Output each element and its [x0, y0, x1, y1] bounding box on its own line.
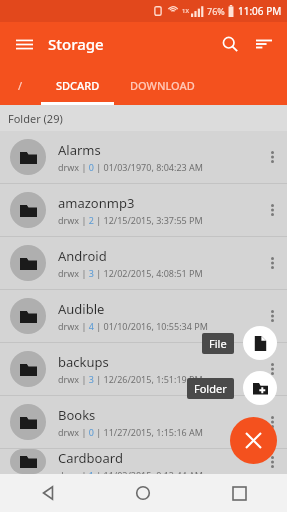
staticText: 11:06 PM: [238, 4, 282, 18]
staticText: Storage: [48, 34, 104, 54]
button[interactable]: Cardboard: [0, 449, 287, 474]
staticText: drwx | 3 | 12/02/2015, 4:08:51 PM: [58, 267, 203, 279]
staticText: 1X: [182, 7, 189, 15]
staticText: drwx | 0 | 01/03/1970, 8:04:23 AM: [58, 161, 203, 173]
button[interactable]: More options: [257, 290, 287, 342]
staticText: SDCARD: [56, 78, 100, 93]
button[interactable]: amazonmp3: [0, 184, 287, 236]
staticText: DOWNLOAD: [130, 78, 195, 93]
staticText: drwx | 0 | 11/27/2015, 1:15:16 AM: [58, 426, 203, 438]
staticText: Folder: [194, 381, 227, 396]
button[interactable]: New Folder: [243, 371, 277, 405]
staticText: drwx | 3 | 12/26/2015, 1:51:19 PM: [58, 373, 203, 385]
button[interactable]: /: [0, 66, 40, 105]
staticText: File: [209, 336, 227, 351]
button[interactable]: More options: [257, 396, 287, 448]
button[interactable]: Alarms: [0, 131, 287, 183]
staticText: Folder (29): [8, 111, 63, 126]
button[interactable]: Audible: [0, 290, 287, 342]
staticText: amazonmp3: [58, 194, 135, 212]
button[interactable]: Home: [95, 474, 191, 512]
button[interactable]: New File: [243, 326, 277, 360]
button[interactable]: More options: [257, 449, 287, 474]
staticText: /: [18, 78, 23, 93]
button[interactable]: Books: [0, 396, 287, 448]
staticText: Cardboard: [58, 449, 123, 467]
staticText: drwx | 1 | 11/02/2015, 9:12:44 AM: [58, 469, 203, 474]
button[interactable]: More options: [257, 343, 287, 395]
button[interactable]: backups: [0, 343, 287, 395]
button[interactable]: DOWNLOAD: [115, 66, 210, 105]
button[interactable]: More options: [257, 184, 287, 236]
staticText: drwx | 2 | 12/15/2015, 3:37:55 PM: [58, 214, 203, 226]
button[interactable]: Search: [213, 27, 247, 61]
button[interactable]: SDCARD: [40, 66, 115, 105]
staticText: Android: [58, 247, 107, 265]
button[interactable]: Android: [0, 237, 287, 289]
button[interactable]: More options: [257, 131, 287, 183]
staticText: backups: [58, 353, 109, 371]
button[interactable]: Close menu: [230, 417, 277, 464]
staticText: Alarms: [58, 141, 101, 159]
button[interactable]: Sort: [247, 27, 281, 61]
button[interactable]: More options: [257, 237, 287, 289]
staticText: Books: [58, 406, 96, 424]
staticText: drwx | 4 | 01/10/2016, 10:55:34 PM: [58, 320, 208, 332]
button[interactable]: File: [209, 336, 227, 351]
staticText: 76%: [207, 5, 225, 17]
staticText: Audible: [58, 300, 105, 318]
button[interactable]: Open navigation drawer: [8, 28, 40, 60]
button[interactable]: Back: [0, 474, 95, 512]
button[interactable]: Folder: [194, 381, 227, 396]
button[interactable]: Recents: [191, 474, 287, 512]
